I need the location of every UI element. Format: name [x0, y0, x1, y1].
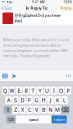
button[interactable]: U: [44, 87, 50, 95]
button[interactable]: O: [58, 87, 64, 95]
button[interactable]: A: [5, 96, 12, 104]
staticText: K: [56, 97, 59, 104]
button[interactable]: Close: [0, 4, 14, 11]
staticText: that: [14, 18, 20, 23]
button[interactable]: T: [30, 87, 36, 95]
staticText: 111: [65, 73, 71, 79]
staticText: J: [50, 97, 51, 104]
staticText: ⌫: [61, 107, 69, 113]
staticText: Q: [3, 87, 7, 94]
button[interactable]: ⇧: [4, 106, 12, 114]
button[interactable]: D: [19, 96, 26, 104]
button[interactable]: G: [33, 96, 40, 104]
staticText: N: [48, 106, 52, 113]
button[interactable]: N: [47, 106, 54, 114]
button[interactable]: H: [40, 96, 47, 104]
button[interactable]: C: [26, 106, 33, 114]
button[interactable]: return: [52, 115, 67, 123]
button[interactable]: W: [9, 87, 15, 95]
button[interactable]: P: [65, 87, 71, 95]
staticText: 123: [8, 117, 14, 122]
button[interactable]: K: [54, 96, 61, 104]
button[interactable]: I: [51, 87, 57, 95]
staticText: Z: [14, 106, 17, 113]
staticText: P: [66, 87, 69, 94]
button[interactable]: B: [40, 106, 47, 114]
staticText: return: [54, 117, 65, 122]
button[interactable]: S: [12, 96, 19, 104]
staticText: 9:41 AM: [32, 0, 44, 4]
staticText: M: [55, 106, 60, 113]
button[interactable]: ⌫: [61, 106, 69, 114]
button[interactable]: X: [19, 106, 26, 114]
staticText: W: [9, 87, 14, 94]
button[interactable]: V: [33, 106, 40, 114]
staticText: U: [45, 87, 49, 94]
button[interactable]: Z: [12, 106, 19, 114]
staticText: O: [59, 87, 63, 94]
staticText: B: [42, 106, 45, 113]
button[interactable]: Reply: [59, 4, 73, 11]
staticText: T: [31, 87, 34, 94]
staticText: In Reply To:: [25, 5, 47, 11]
staticText: ⇧: [6, 107, 10, 113]
button[interactable]: L: [61, 96, 68, 104]
button[interactable]: Y: [37, 87, 43, 95]
staticText: I: [53, 87, 55, 94]
button[interactable]: J: [47, 96, 54, 104]
staticText: ➤: [11, 72, 17, 80]
staticText: •••ᐧ AT&T: [1, 0, 12, 4]
button[interactable]: Q: [2, 87, 8, 95]
staticText: space: [28, 117, 38, 122]
staticText: V: [35, 106, 38, 113]
staticText: E: [17, 87, 20, 94]
button[interactable]: R: [23, 87, 29, 95]
button[interactable]: space: [16, 115, 51, 123]
staticText: When you really think about it, it's kin…: [2, 37, 68, 58]
staticText: A: [7, 97, 10, 104]
button[interactable]: 123: [6, 115, 15, 123]
button[interactable]: E: [16, 87, 22, 95]
staticText: G: [34, 97, 38, 104]
staticText: Y: [38, 87, 41, 94]
button[interactable]: M: [54, 106, 61, 114]
staticText: H: [41, 97, 45, 104]
staticText: C: [28, 106, 31, 113]
staticText: 100%: [63, 0, 71, 4]
staticText: X: [21, 106, 24, 113]
staticText: D: [20, 97, 24, 104]
button[interactable]: Location: [11, 72, 17, 80]
staticText: Reply: [60, 5, 71, 11]
staticText: F: [28, 97, 31, 104]
button[interactable]: F: [26, 96, 33, 104]
staticText: S: [14, 97, 17, 104]
staticText: Close: [2, 5, 12, 11]
staticText: @BigZaphod Did you know: [14, 12, 60, 18]
staticText: R: [24, 87, 27, 94]
staticText: L: [63, 97, 66, 104]
